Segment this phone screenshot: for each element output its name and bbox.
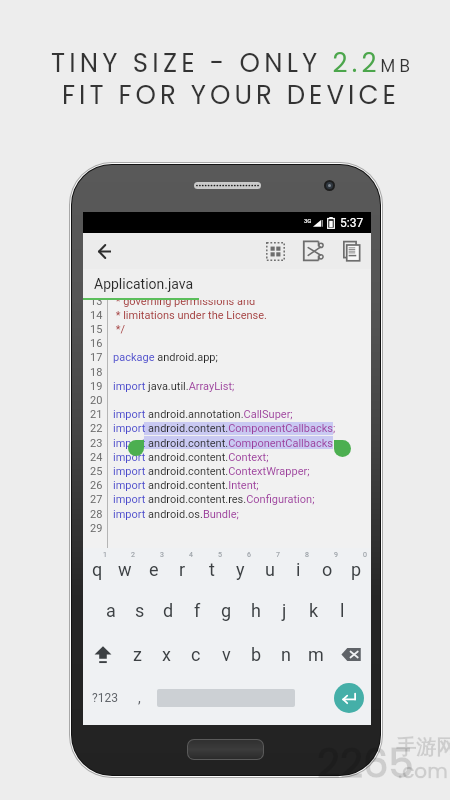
staticText: 13 xyxy=(90,300,103,308)
button[interactable]: g xyxy=(212,591,241,629)
button[interactable]: k xyxy=(299,591,328,629)
button[interactable]: m xyxy=(301,635,331,673)
button[interactable]: o xyxy=(313,550,342,588)
staticText: 3 xyxy=(160,551,164,559)
staticText: 5:37 xyxy=(340,216,364,230)
staticText: import android.content.Context; xyxy=(113,451,269,464)
button[interactable]: t xyxy=(197,550,226,588)
button[interactable]: p xyxy=(342,550,371,588)
staticText: 18 xyxy=(90,366,103,379)
button[interactable]: Application.java xyxy=(83,269,371,298)
button[interactable]: u xyxy=(255,550,284,588)
staticText: 15 xyxy=(90,323,103,336)
button[interactable]: i xyxy=(284,550,313,588)
button[interactable]: j xyxy=(270,591,299,629)
staticText: import java.util.ArrayList; xyxy=(113,380,235,393)
staticText: 14 xyxy=(90,309,103,322)
staticText: w xyxy=(118,559,132,580)
staticText: FIT FOR YOUR DEVICE xyxy=(62,77,400,113)
staticText: import android.content.ContextWrapper; xyxy=(113,465,310,478)
staticText: 2 xyxy=(131,551,135,559)
staticText: 20 xyxy=(90,394,103,407)
staticText: 25 xyxy=(90,465,103,478)
staticText: u xyxy=(265,559,275,580)
button[interactable]: c xyxy=(181,635,211,673)
staticText: q xyxy=(92,559,103,580)
button[interactable]: r xyxy=(168,550,197,588)
staticText: 3G xyxy=(304,217,312,224)
staticText: k xyxy=(309,600,319,621)
staticText: v xyxy=(222,644,231,665)
staticText: 4 xyxy=(189,551,193,559)
staticText: 19 xyxy=(90,380,103,393)
button[interactable]: Cut xyxy=(294,233,332,269)
button[interactable]: v xyxy=(211,635,241,673)
staticText: d xyxy=(163,600,174,621)
button[interactable]: Shift xyxy=(83,635,123,673)
staticText: import android.content.res.Configuration… xyxy=(113,493,315,506)
staticText: f xyxy=(194,600,201,621)
button[interactable]: q xyxy=(83,550,111,588)
button[interactable]: y xyxy=(226,550,255,588)
button[interactable]: ?123 xyxy=(87,680,123,716)
staticText: 22 xyxy=(90,422,103,435)
staticText: g xyxy=(221,600,232,621)
button[interactable]: b xyxy=(241,635,271,673)
staticText: x xyxy=(162,644,171,665)
staticText: 6 xyxy=(247,551,251,559)
button[interactable]: x xyxy=(152,635,181,673)
staticText: 29 xyxy=(90,522,103,535)
staticText: 21 xyxy=(90,408,103,421)
staticText: 28 xyxy=(90,508,103,521)
staticText: 23 xyxy=(90,437,103,450)
staticText: l xyxy=(340,600,345,621)
staticText: .com xyxy=(398,757,448,785)
button[interactable]: d xyxy=(154,591,183,629)
staticText: */ xyxy=(113,323,126,336)
staticText: 9 xyxy=(334,551,338,559)
staticText: c xyxy=(191,644,201,665)
staticText: * governing permissions and xyxy=(113,300,256,308)
button[interactable]: Backspace xyxy=(331,635,371,673)
staticText: y xyxy=(236,559,245,580)
button[interactable]: n xyxy=(271,635,301,673)
staticText: import android.content.ComponentCallback… xyxy=(113,437,333,450)
staticText: a xyxy=(106,600,116,621)
button[interactable]: h xyxy=(241,591,270,629)
staticText: m xyxy=(308,644,324,665)
button[interactable]: f xyxy=(183,591,212,629)
staticText: j xyxy=(282,600,287,621)
button[interactable]: Enter xyxy=(334,683,364,713)
staticText: 5 xyxy=(218,551,222,559)
button[interactable]: , xyxy=(126,680,152,716)
staticText: 7 xyxy=(276,551,280,559)
staticText: 16 xyxy=(90,337,103,350)
staticText: 27 xyxy=(90,493,103,506)
staticText: * limitations under the License. xyxy=(113,309,267,322)
staticText: import android.annotation.CallSuper; xyxy=(113,408,293,421)
staticText: o xyxy=(322,559,333,580)
staticText: package android.app; xyxy=(113,351,218,364)
staticText: 8 xyxy=(305,551,309,559)
button[interactable]: . xyxy=(326,680,350,716)
button[interactable]: e xyxy=(139,550,168,588)
button[interactable]: z xyxy=(123,635,152,673)
button[interactable]: a xyxy=(97,591,125,629)
button[interactable]: l xyxy=(328,591,357,629)
staticText: t xyxy=(209,559,215,580)
staticText: i xyxy=(296,559,301,580)
staticText: import android.os.Bundle; xyxy=(113,508,239,521)
staticText: h xyxy=(251,600,261,621)
button[interactable]: s xyxy=(125,591,154,629)
staticText: 26 xyxy=(90,479,103,492)
button[interactable]: Select all xyxy=(256,233,294,269)
staticText: e xyxy=(149,559,159,580)
staticText: import android.content.Intent; xyxy=(113,479,259,492)
staticText: ?123 xyxy=(92,691,118,705)
button[interactable]: Back xyxy=(91,233,117,269)
button[interactable]: w xyxy=(111,550,139,588)
staticText: p xyxy=(351,559,362,580)
button[interactable]: Copy xyxy=(332,233,370,269)
